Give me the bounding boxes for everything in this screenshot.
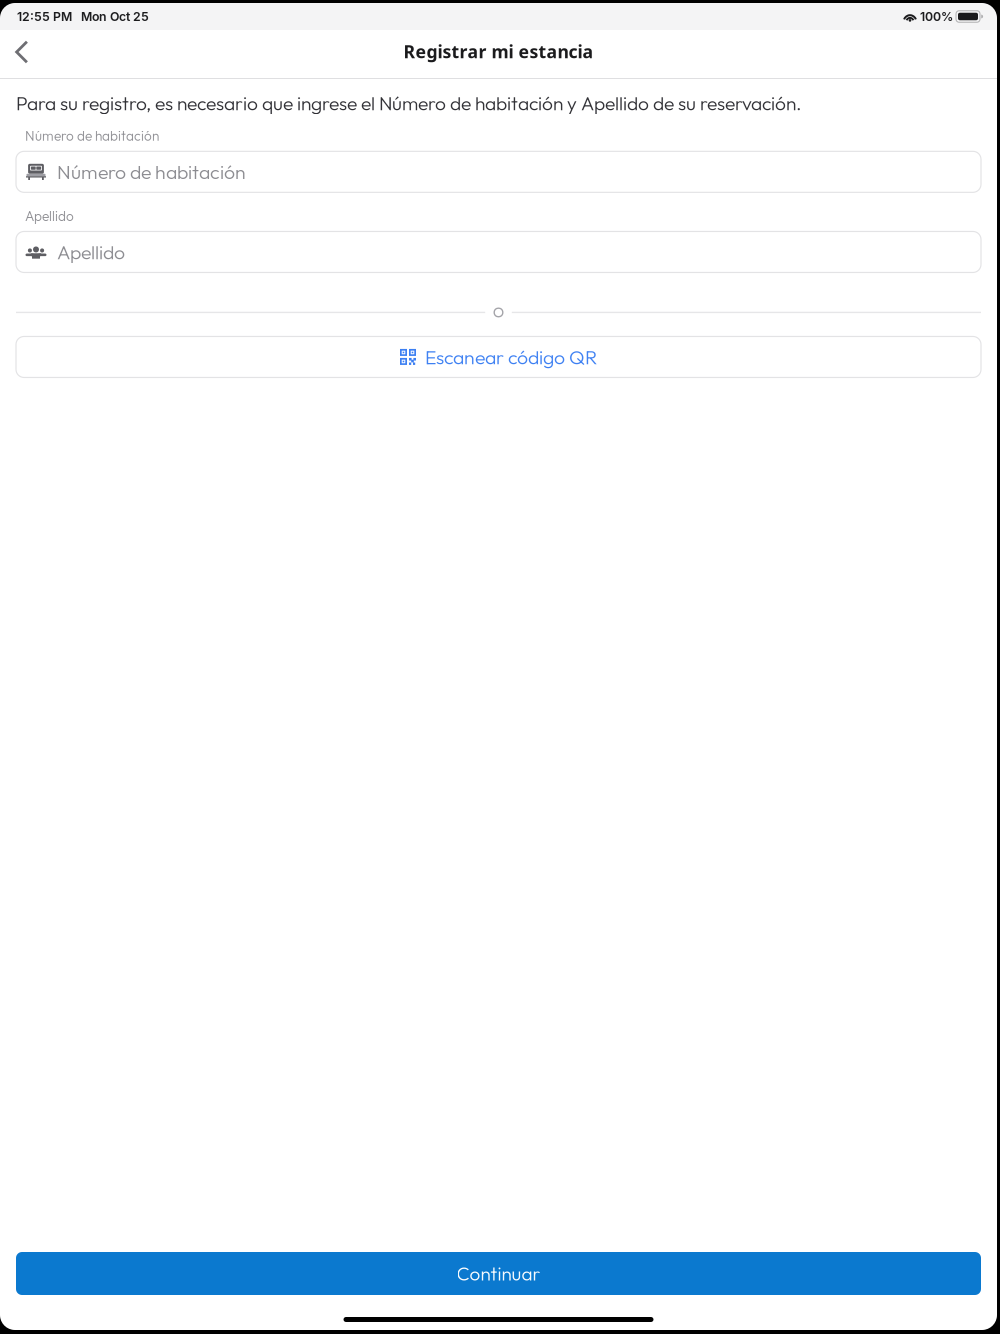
staticText: Escanear código QR bbox=[425, 345, 597, 369]
staticText: Número de habitación bbox=[57, 160, 246, 184]
staticText: Apellido bbox=[25, 207, 74, 224]
staticText: Continuar bbox=[456, 1262, 540, 1285]
staticText: Registrar mi estancia bbox=[403, 39, 593, 63]
button[interactable]: Back bbox=[0, 30, 46, 78]
button[interactable]: Escanear código QR bbox=[16, 336, 981, 377]
button[interactable]: Continuar bbox=[16, 1252, 981, 1295]
staticText: 100% bbox=[917, 9, 956, 24]
staticText: Número de habitación bbox=[25, 127, 159, 144]
staticText: Para su registro, es necesario que ingre… bbox=[16, 91, 802, 115]
staticText: Mon Oct 25 bbox=[72, 9, 149, 24]
staticText: Apellido bbox=[57, 240, 125, 264]
staticText: 12:55 PM bbox=[17, 9, 72, 24]
